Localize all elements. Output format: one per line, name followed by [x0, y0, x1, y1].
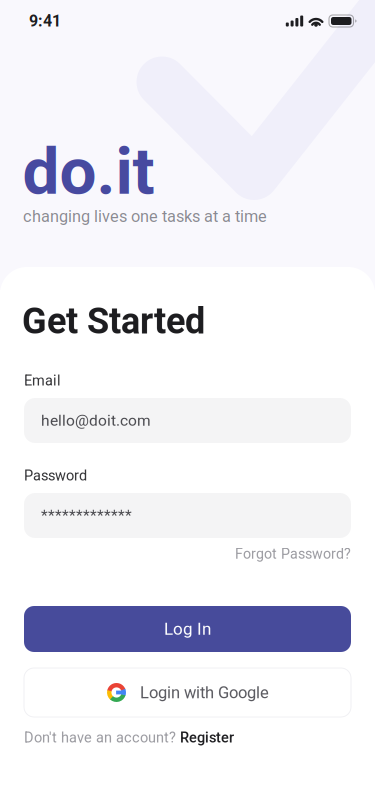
staticText: Email — [24, 372, 61, 389]
staticText: Log In — [164, 619, 211, 639]
staticText: hello@doit.com — [41, 411, 151, 430]
staticText: changing lives one tasks at a time — [23, 207, 267, 226]
staticText: Password — [24, 467, 87, 484]
staticText: ************* — [41, 506, 132, 525]
staticText: do.it — [22, 133, 154, 210]
button[interactable]: Login with Google — [24, 668, 351, 717]
button[interactable]: Register — [180, 729, 234, 746]
staticText: Don't have an account? — [24, 729, 180, 746]
staticText: 9:41 — [29, 12, 61, 30]
staticText: Forgot Password? — [235, 546, 351, 562]
staticText: Get Started — [22, 300, 205, 342]
button[interactable]: Forgot Password? — [24, 543, 351, 565]
button[interactable]: Log In — [24, 606, 351, 652]
staticText: Login with Google — [140, 683, 269, 702]
staticText: Register — [180, 729, 234, 746]
